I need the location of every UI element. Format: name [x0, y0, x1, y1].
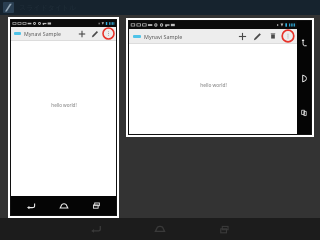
staticText: Mynavi Sample: [24, 30, 61, 37]
button[interactable]: Delete: [265, 29, 280, 43]
button[interactable]: Edit: [250, 29, 265, 43]
button[interactable]: More options: [101, 27, 115, 40]
button[interactable]: Add: [235, 29, 250, 43]
button[interactable]: Edit: [88, 27, 101, 40]
staticText: Mynavi Sample: [144, 33, 183, 40]
button[interactable]: Home: [128, 218, 192, 240]
button[interactable]: Home: [297, 63, 311, 93]
button[interactable]: Logo: [3, 2, 14, 13]
staticText: hello world!: [51, 102, 77, 108]
button[interactable]: Back: [19, 196, 43, 215]
staticText: hello world!: [200, 82, 227, 89]
button[interactable]: Recent apps: [84, 196, 108, 215]
button[interactable]: Add: [75, 27, 88, 40]
button[interactable]: Recent apps: [192, 218, 256, 240]
button[interactable]: Home: [52, 196, 76, 215]
button[interactable]: More options: [280, 29, 296, 43]
button[interactable]: Back: [297, 27, 311, 57]
button[interactable]: Recent apps: [297, 98, 311, 128]
